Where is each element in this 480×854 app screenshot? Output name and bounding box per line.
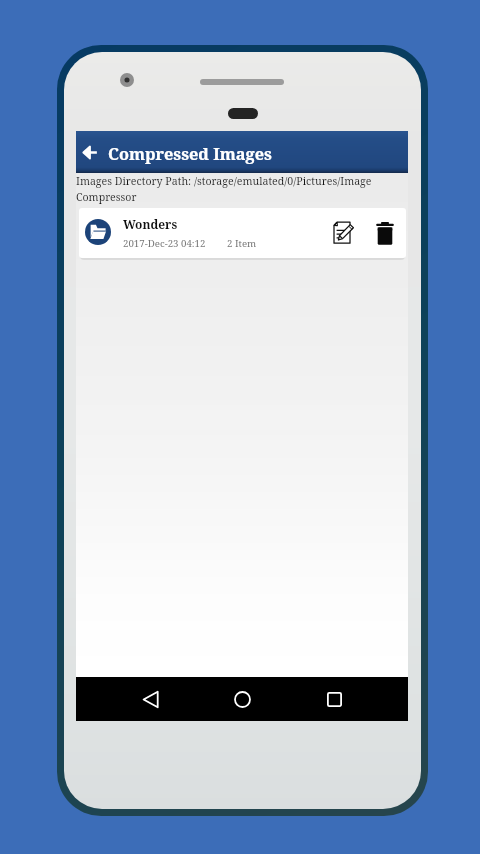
button[interactable]: Rename folder [326,215,360,251]
button[interactable]: Home [220,677,264,721]
staticText: 2 Item [227,237,257,250]
button[interactable]: Back [79,135,101,169]
button[interactable]: Delete folder [368,215,402,251]
staticText: Images Directory Path: /storage/emulated… [76,174,400,204]
button[interactable]: Recent apps [312,677,356,721]
button[interactable]: Back [128,677,172,721]
staticText: Wonders [123,216,178,232]
staticText: Compressed Images [108,143,272,165]
button[interactable]: Wonders [79,208,406,258]
staticText: 2017-Dec-23 04:12 [123,237,206,250]
